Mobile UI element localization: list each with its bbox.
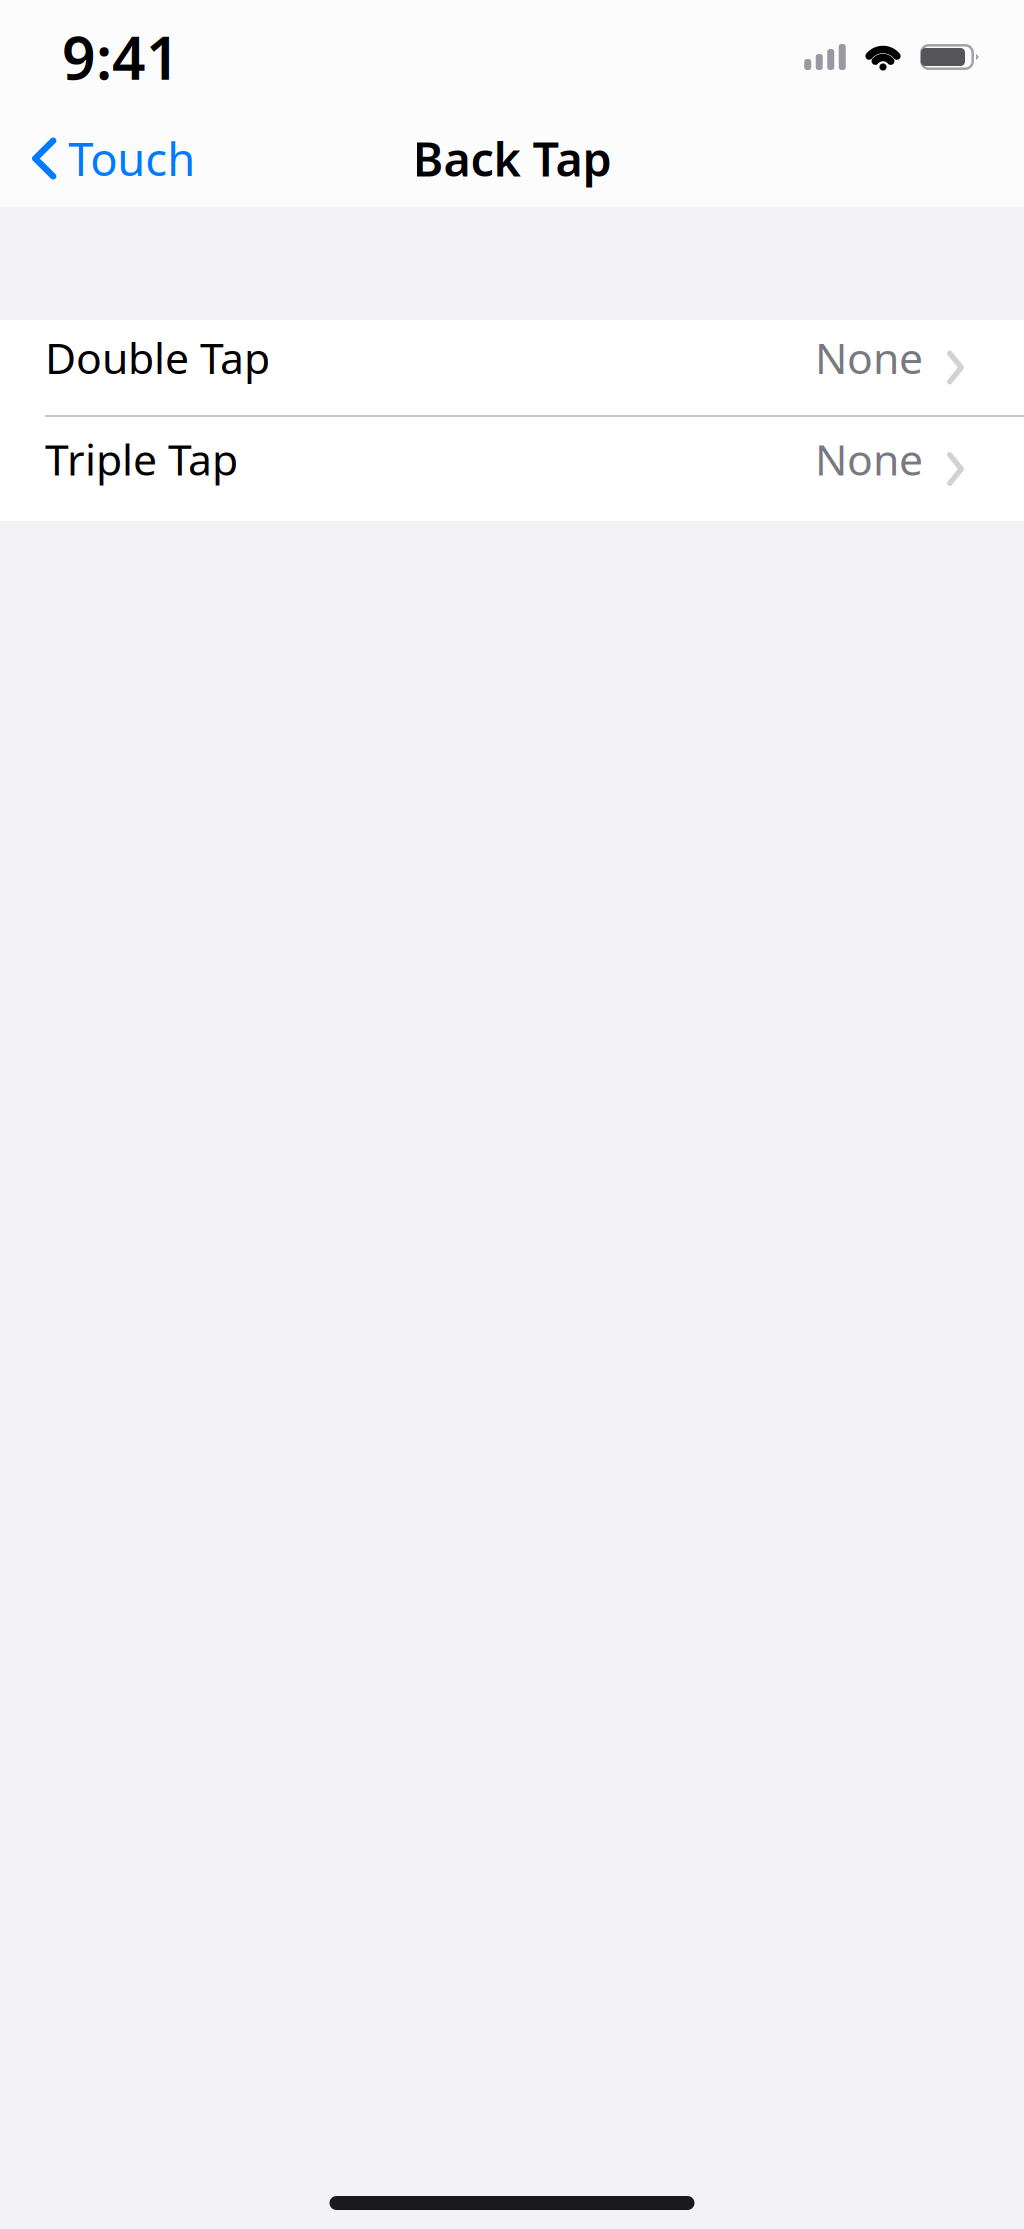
button[interactable]: Triple Tap <box>0 417 1024 521</box>
staticText: Double Tap <box>45 329 270 386</box>
staticText: Back Tap <box>412 127 611 189</box>
staticText: None <box>815 329 923 386</box>
staticText: 9:41 <box>62 18 180 96</box>
button[interactable]: Double Tap <box>0 320 1024 415</box>
staticText: Triple Tap <box>45 431 238 487</box>
staticText: Touch <box>68 128 195 189</box>
button[interactable]: Touch <box>0 92 215 207</box>
staticText: None <box>815 431 923 487</box>
